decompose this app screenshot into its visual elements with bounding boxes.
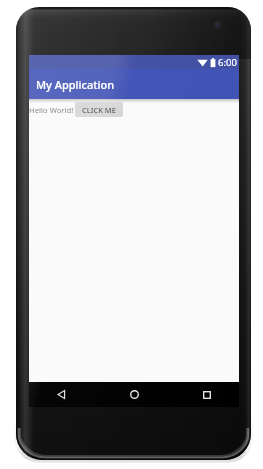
staticText: CLICK ME (82, 105, 116, 115)
button[interactable]: Back (29, 382, 93, 407)
button[interactable]: CLICK ME (75, 102, 123, 117)
button[interactable]: Recents (175, 382, 239, 407)
staticText: My Application (36, 77, 115, 92)
staticText: 6:00 (218, 56, 237, 69)
button[interactable]: Home (102, 382, 166, 407)
staticText: Hello World! (29, 105, 74, 115)
